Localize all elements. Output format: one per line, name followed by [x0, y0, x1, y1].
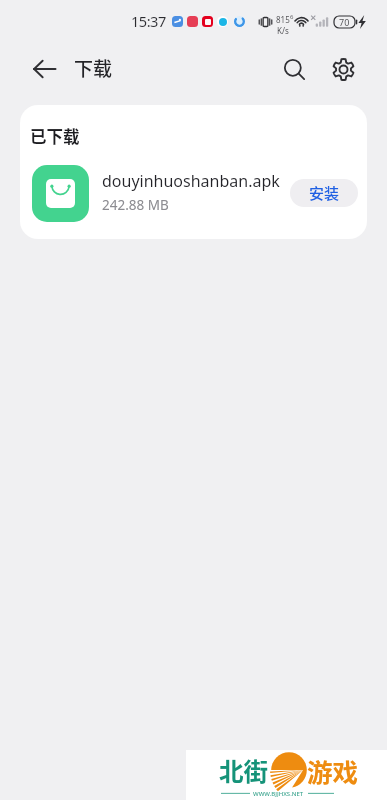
button[interactable]: douyinhuoshanban.apk: [20, 159, 367, 229]
staticText: 242.88 MB: [102, 196, 169, 214]
staticText: 6: [290, 13, 294, 21]
button[interactable]: Back: [29, 54, 59, 84]
staticText: 已下载: [30, 124, 80, 148]
staticText: 北街: [219, 753, 268, 788]
staticText: douyinhuoshanban.apk: [102, 170, 280, 192]
button[interactable]: 安装: [290, 179, 358, 207]
staticText: 15:37: [131, 11, 166, 31]
button[interactable]: Search: [278, 53, 310, 85]
staticText: 70: [339, 16, 350, 28]
staticText: 815: [276, 14, 290, 25]
staticText: 游戏: [307, 752, 359, 789]
staticText: WWW.BJJHXS.NET: [253, 790, 304, 798]
staticText: 下载: [74, 54, 113, 82]
staticText: 安装: [309, 182, 340, 204]
staticText: K/s: [277, 25, 289, 36]
button[interactable]: Settings: [327, 53, 359, 85]
